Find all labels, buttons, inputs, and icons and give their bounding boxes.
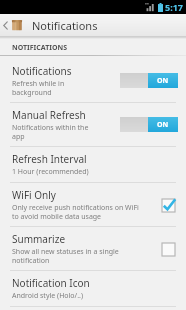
staticText: Refresh while in background — [12, 79, 65, 97]
staticText: WiFi Only — [12, 188, 56, 202]
staticText: Manual Refresh — [12, 108, 86, 122]
button[interactable]: Summarize — [0, 227, 186, 270]
staticText: ON — [157, 76, 169, 86]
button[interactable]: Manual Refresh — [0, 103, 186, 146]
button[interactable]: Refresh Interval — [0, 147, 186, 182]
staticText: 1 Hour (recommended) — [12, 167, 89, 177]
staticText: 5:17 — [165, 1, 183, 13]
button[interactable]: Unchecked — [158, 239, 178, 259]
button[interactable]: Checked — [158, 195, 178, 215]
staticText: Notifications — [32, 18, 98, 33]
staticText: Notification Icon — [12, 276, 90, 290]
staticText: Notifications within the app — [12, 123, 89, 141]
button[interactable]: Toggle on — [120, 117, 178, 132]
staticText: ON — [157, 120, 169, 130]
button[interactable]: Notification Icon — [0, 271, 186, 306]
button[interactable]: Notifications — [0, 59, 186, 102]
button[interactable]: Navigate up — [0, 14, 26, 36]
staticText: Android style (Holo/..) — [12, 291, 84, 301]
staticText: NOTIFICATIONS — [12, 43, 68, 53]
staticText: Show all new statuses in a single notifi… — [12, 247, 119, 265]
button[interactable]: WiFi Only — [0, 183, 186, 226]
staticText: Refresh Interval — [12, 152, 87, 166]
staticText: Notifications — [12, 64, 72, 78]
staticText: Only receive push notifications on WiFi … — [12, 203, 139, 221]
button[interactable]: Toggle on — [120, 73, 178, 88]
staticText: Summarize — [12, 232, 66, 246]
